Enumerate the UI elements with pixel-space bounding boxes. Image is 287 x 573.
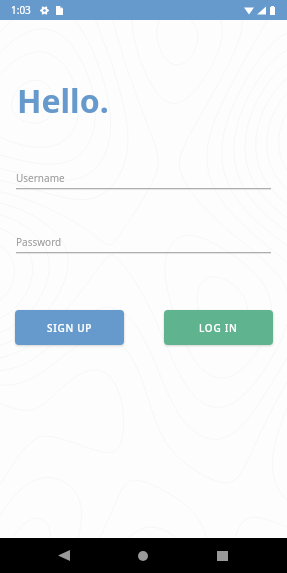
staticText: SIGN UP — [47, 321, 93, 335]
button[interactable]: Password — [16, 235, 271, 254]
button[interactable]: Home — [123, 538, 163, 573]
button[interactable]: Recent apps — [202, 538, 242, 573]
button[interactable]: LOG IN — [164, 310, 273, 345]
staticText: Password — [16, 235, 62, 249]
button[interactable]: SIGN UP — [15, 310, 124, 345]
staticText: Username — [16, 171, 65, 185]
button[interactable]: Back — [44, 538, 84, 573]
staticText: Hello. — [17, 79, 109, 123]
staticText: LOG IN — [199, 321, 238, 335]
staticText: 1:03 — [11, 3, 31, 17]
button[interactable]: Username — [16, 171, 271, 190]
